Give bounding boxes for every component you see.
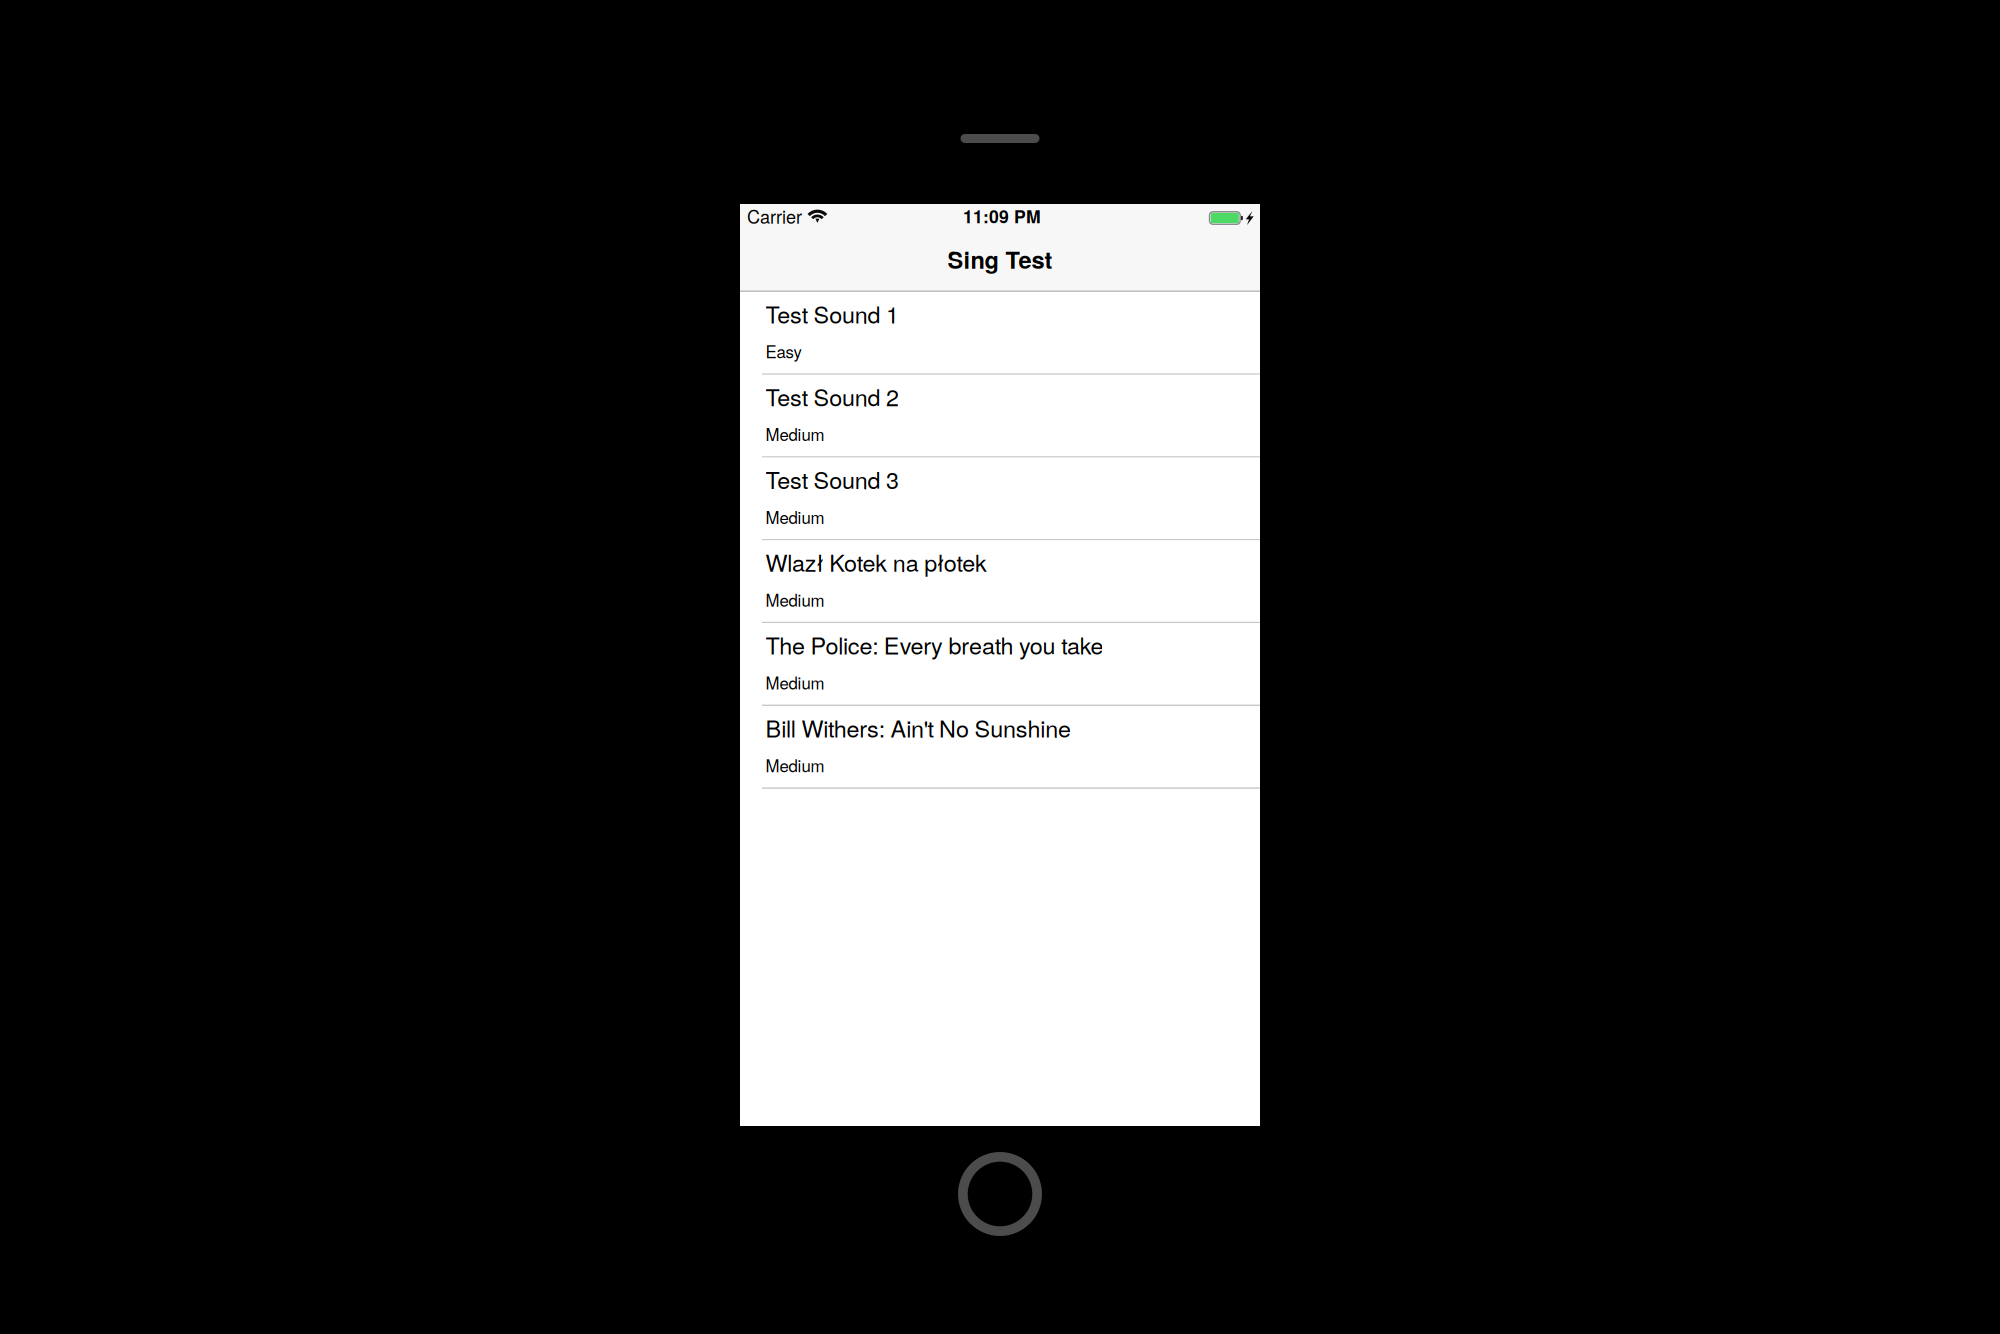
button[interactable]: Bill Withers: Ain't No Sunshine (740, 706, 1260, 789)
button[interactable]: Test Sound 3 (740, 458, 1260, 540)
staticText: Easy (765, 339, 801, 363)
staticText: The Police: Every breath you take (765, 628, 1103, 661)
button[interactable]: The Police: Every breath you take (740, 623, 1260, 706)
staticText: Bill Withers: Ain't No Sunshine (765, 711, 1071, 744)
staticText: Carrier (747, 203, 802, 229)
staticText: Test Sound 2 (765, 379, 899, 413)
staticText: Medium (765, 670, 824, 694)
staticText: Medium (765, 753, 824, 777)
staticText: Medium (765, 587, 824, 611)
staticText: Medium (765, 505, 824, 529)
button[interactable]: Test Sound 1 (740, 292, 1260, 375)
staticText: Test Sound 3 (765, 462, 899, 496)
button[interactable]: Test Sound 2 (740, 375, 1260, 458)
button[interactable]: Wlazł Kotek na płotek (740, 540, 1260, 623)
staticText: Test Sound 1 (765, 297, 899, 330)
staticText: 11:09 PM (963, 203, 1041, 229)
staticText: Sing Test (947, 242, 1052, 276)
staticText: Medium (765, 422, 824, 446)
staticText: Wlazł Kotek na płotek (765, 545, 987, 578)
